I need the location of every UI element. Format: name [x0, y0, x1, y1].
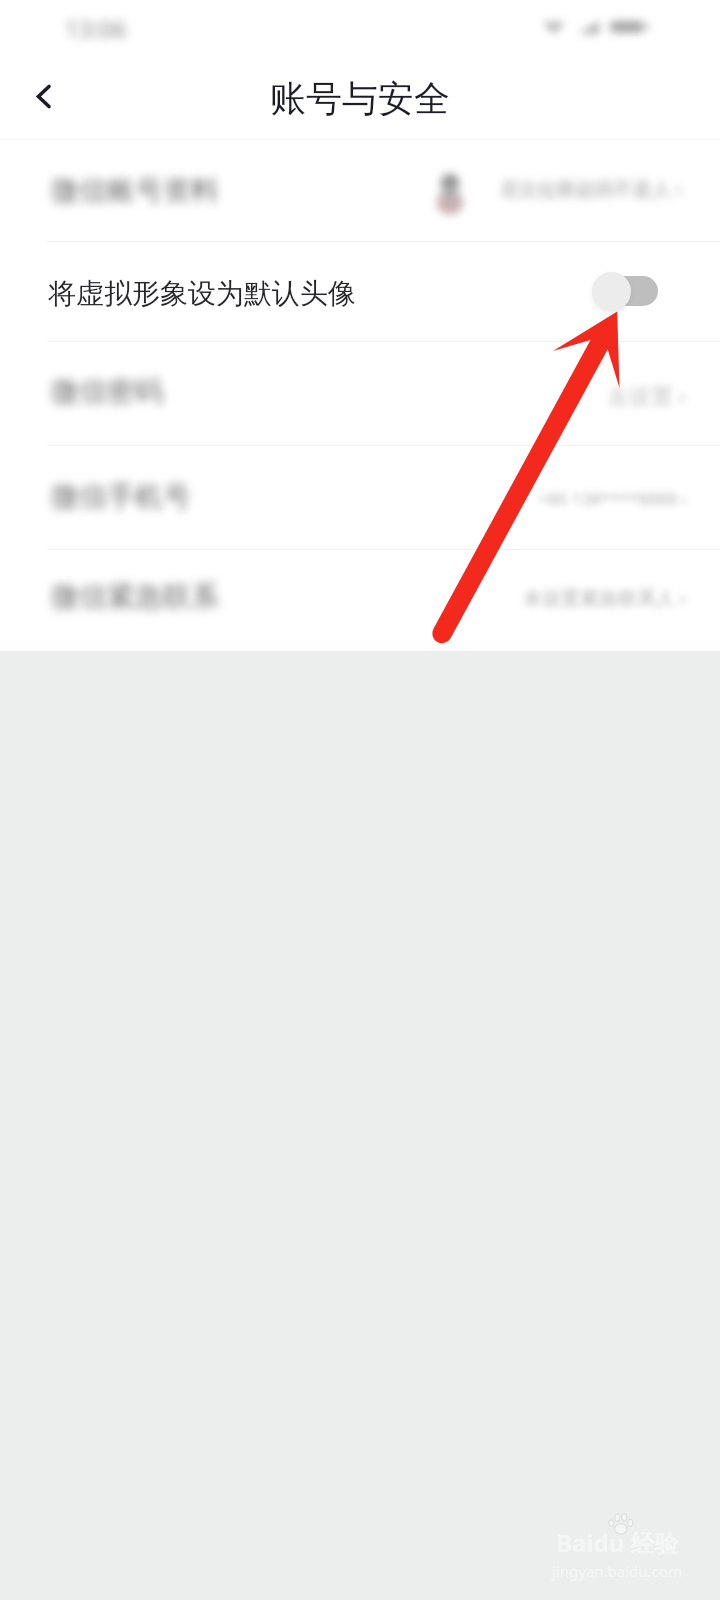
staticText: 13:06 [65, 12, 127, 45]
button[interactable]: 微信密码 [0, 341, 720, 445]
button[interactable]: 微信紧急联系 [0, 549, 720, 651]
staticText: 微信账号资料 [51, 173, 219, 208]
button[interactable]: 将虚拟形象设为默认头像 [0, 241, 720, 341]
staticText: 尼古拉斯赵四不是人 › [500, 176, 682, 202]
staticText: 未设置紧急联系人 › [523, 585, 686, 611]
button[interactable]: 微信手机号 [0, 445, 720, 549]
button[interactable]: 微信账号资料 [0, 140, 720, 241]
staticText: +86 138****8888 › [538, 487, 687, 510]
staticText: 微信紧急联系 [51, 579, 219, 614]
staticText: 去设置 › [607, 380, 686, 410]
staticText: Baidu 经验 [556, 1526, 679, 1559]
staticText: 将虚拟形象设为默认头像 [48, 276, 356, 311]
staticText: 账号与安全 [270, 76, 450, 121]
staticText: jingyan.baidu.com [552, 1561, 682, 1581]
staticText: 微信密码 [51, 374, 163, 409]
staticText: 微信手机号 [51, 479, 191, 514]
button[interactable]: Back [0, 66, 78, 140]
button[interactable]: Use avatar as default profile picture [592, 269, 658, 313]
